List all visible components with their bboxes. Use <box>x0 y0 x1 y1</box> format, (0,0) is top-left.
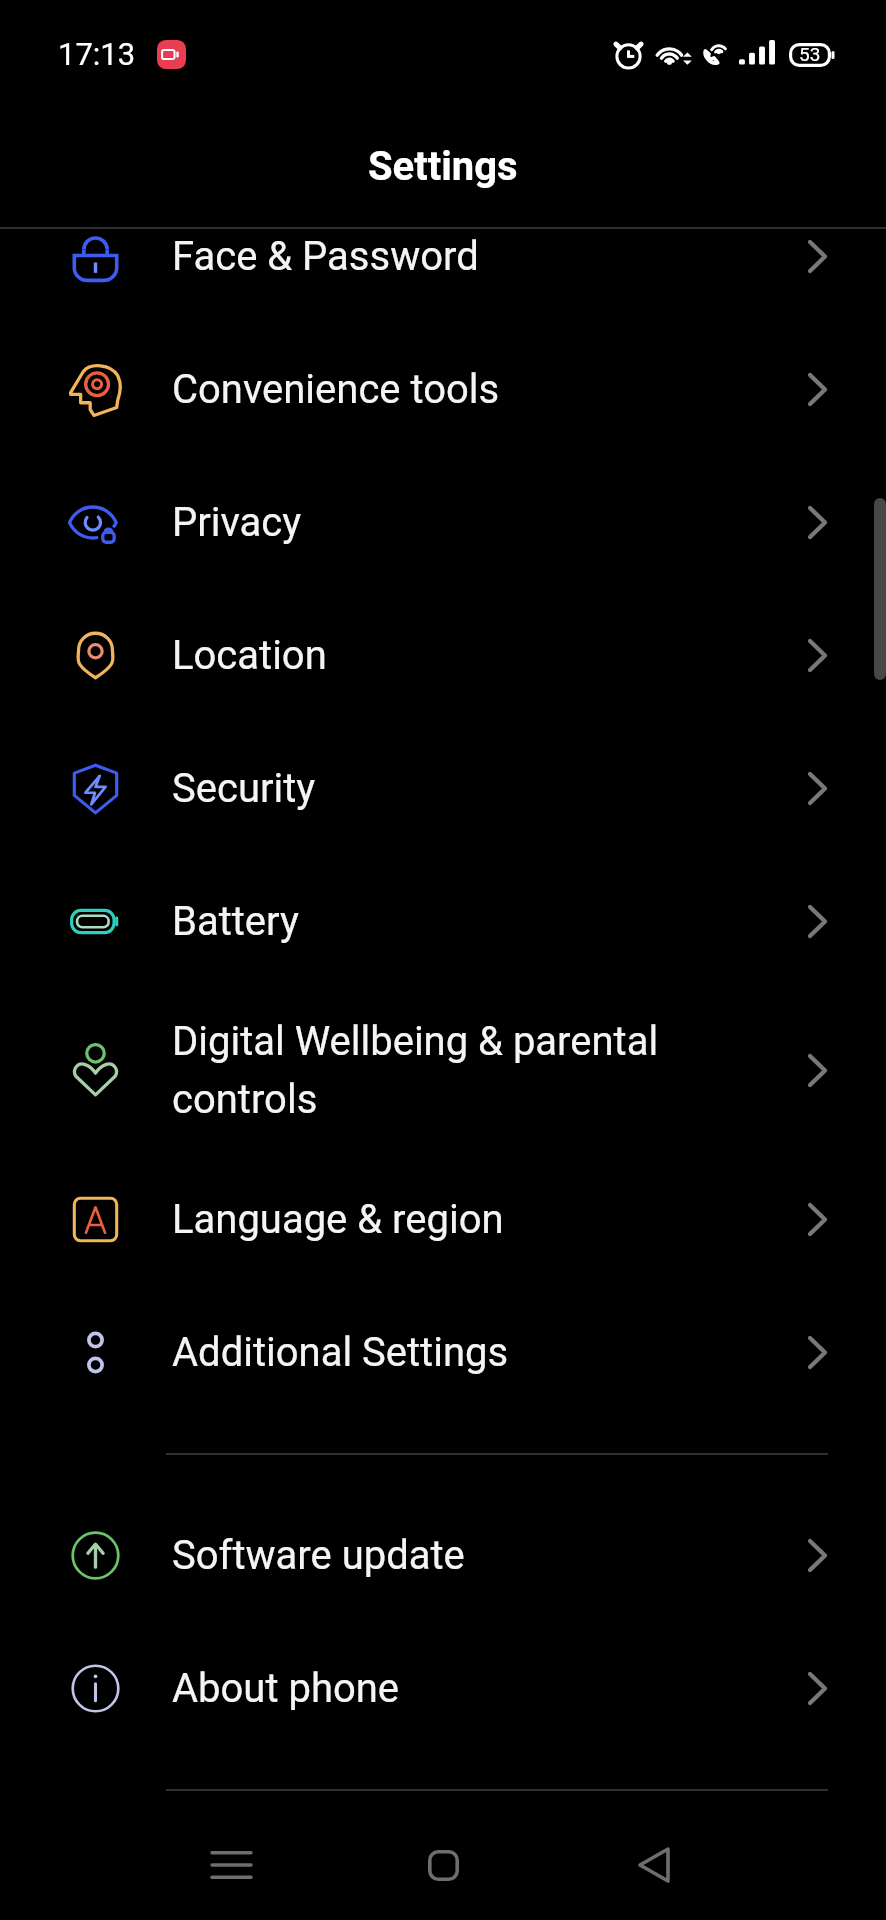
staticText: Privacy <box>172 499 784 546</box>
button[interactable]: Back <box>574 1810 734 1920</box>
button[interactable]: Digital Wellbeing & parental controls <box>0 988 886 1153</box>
staticText: Location <box>172 632 784 679</box>
button[interactable]: Additional Settings <box>0 1286 886 1419</box>
staticText: Settings <box>368 143 518 190</box>
button[interactable]: About phone <box>0 1622 886 1755</box>
button[interactable]: Face & Password <box>0 229 886 323</box>
button[interactable]: Home <box>363 1810 523 1920</box>
staticText: Convenience tools <box>172 366 784 413</box>
staticText: 53 <box>799 43 821 65</box>
button[interactable]: Battery <box>0 855 886 988</box>
button[interactable]: Privacy <box>0 456 886 589</box>
button[interactable]: Recents <box>151 1810 311 1920</box>
button[interactable]: Location <box>0 589 886 722</box>
staticText: Software update <box>172 1532 784 1579</box>
button[interactable]: Convenience tools <box>0 323 886 456</box>
button[interactable]: Security <box>0 722 886 855</box>
staticText: About phone <box>172 1665 784 1712</box>
staticText: Face & Password <box>172 233 784 280</box>
button[interactable]: Language & region <box>0 1153 886 1286</box>
staticText: Digital Wellbeing & parental controls <box>172 1018 784 1123</box>
staticText: 17:13 <box>58 36 136 72</box>
staticText: Language & region <box>172 1196 784 1243</box>
staticText: Security <box>172 765 784 812</box>
staticText: Battery <box>172 898 784 945</box>
staticText: Additional Settings <box>172 1329 784 1376</box>
button[interactable]: Software update <box>0 1489 886 1622</box>
